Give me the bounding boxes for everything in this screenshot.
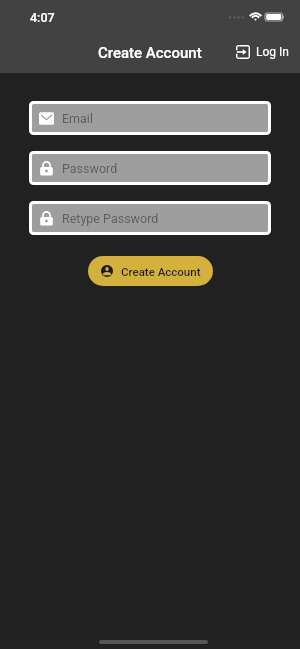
button[interactable]: Password — [29, 151, 271, 185]
staticText: Create Account — [98, 44, 202, 62]
staticText: Email — [62, 111, 93, 126]
other: Log In — [236, 45, 250, 59]
staticText: Log In — [256, 45, 289, 59]
staticText: Password — [62, 161, 118, 176]
button[interactable]: Retype Password — [29, 201, 271, 235]
staticText: 4:07 — [30, 10, 55, 25]
button[interactable]: Create Account — [88, 256, 213, 286]
button[interactable]: Email — [29, 101, 271, 135]
staticText: Retype Password — [62, 211, 159, 226]
staticText: Create Account — [121, 265, 201, 278]
button[interactable]: Log In — [228, 41, 300, 69]
